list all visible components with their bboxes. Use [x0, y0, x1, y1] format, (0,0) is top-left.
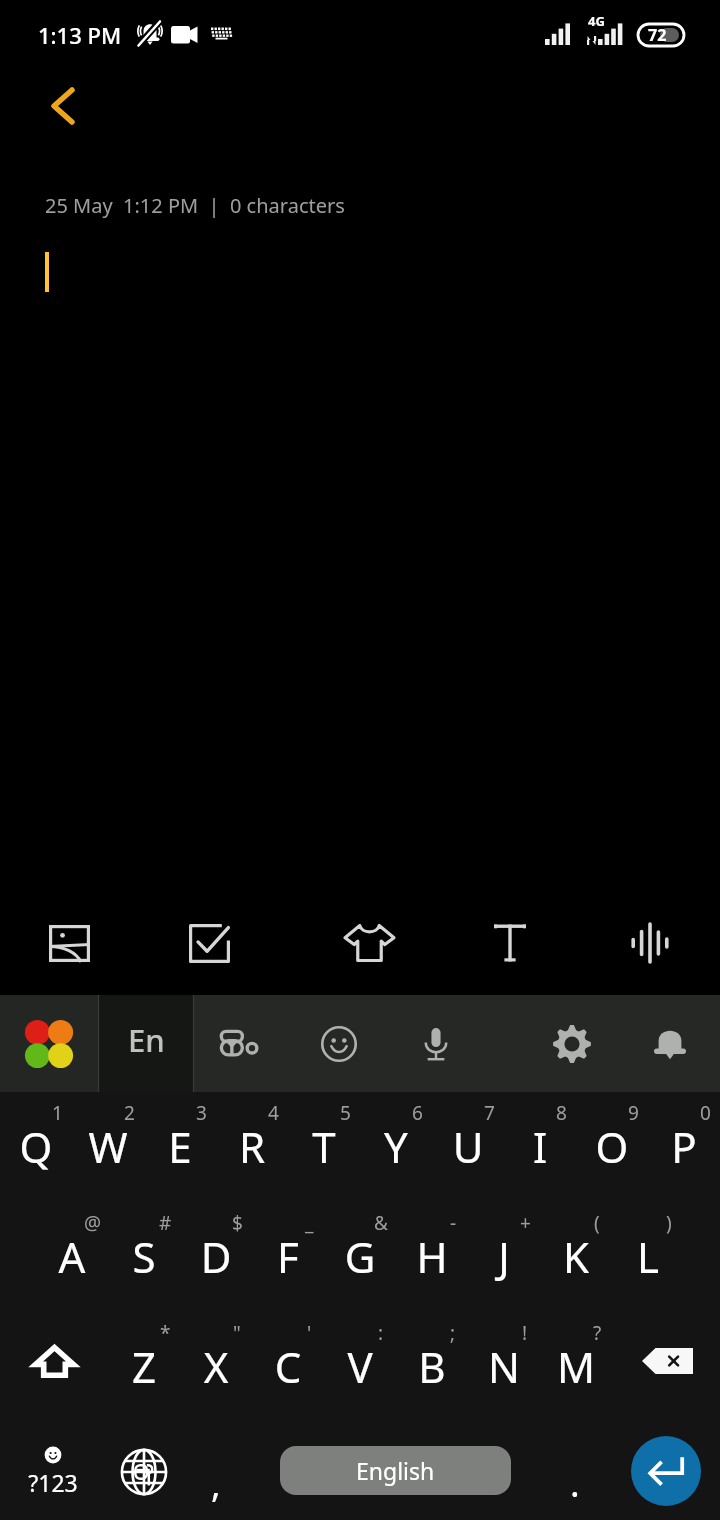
button[interactable]: _: [252, 1202, 324, 1312]
button[interactable]: &: [324, 1202, 396, 1312]
staticText: 1:13 PM: [38, 20, 122, 50]
staticText: *: [160, 1320, 171, 1346]
staticText: C: [252, 1338, 324, 1395]
staticText: ': [307, 1320, 312, 1346]
staticText: J: [468, 1228, 540, 1285]
staticText: Y: [360, 1118, 432, 1175]
staticText: M: [540, 1338, 612, 1395]
staticText: 6: [412, 1100, 423, 1126]
staticText: 2: [124, 1100, 135, 1126]
button[interactable]: #: [108, 1202, 180, 1312]
button[interactable]: Language: [191, 995, 287, 1092]
staticText: .: [570, 1459, 580, 1508]
button[interactable]: 9: [576, 1092, 648, 1202]
staticText: _: [305, 1210, 314, 1236]
staticText: R: [216, 1118, 288, 1175]
button[interactable]: ,: [180, 1422, 252, 1520]
staticText: A: [36, 1228, 108, 1285]
button[interactable]: ?: [540, 1312, 612, 1422]
button[interactable]: .: [539, 1422, 611, 1520]
button[interactable]: Shift: [0, 1312, 108, 1422]
button[interactable]: Text style: [470, 892, 550, 994]
staticText: !: [522, 1320, 528, 1346]
staticText: L: [612, 1228, 684, 1285]
staticText: G: [324, 1228, 396, 1285]
button[interactable]: Add checklist: [169, 892, 249, 994]
button[interactable]: Switch language: [108, 1422, 180, 1520]
staticText: ,: [211, 1459, 221, 1508]
staticText: 1: [52, 1100, 63, 1126]
staticText: ": [233, 1320, 241, 1346]
staticText: &: [374, 1210, 388, 1236]
staticText: 3: [196, 1100, 207, 1126]
button[interactable]: En: [98, 995, 194, 1092]
staticText: B: [396, 1338, 468, 1395]
button[interactable]: 8: [504, 1092, 576, 1202]
button[interactable]: 1: [0, 1092, 72, 1202]
staticText: -: [450, 1210, 457, 1236]
staticText: ?: [593, 1320, 602, 1346]
staticText: 25 May 1:12 PM | 0 characters: [45, 192, 345, 219]
button[interactable]: Notifications: [622, 995, 718, 1092]
staticText: 4G: [588, 12, 605, 30]
button[interactable]: Voice input: [388, 995, 484, 1092]
staticText: ): [666, 1210, 672, 1236]
button[interactable]: Settings: [524, 995, 620, 1092]
button[interactable]: Voice note: [610, 892, 690, 994]
button[interactable]: Enter: [631, 1436, 701, 1506]
button[interactable]: ": [180, 1312, 252, 1422]
button[interactable]: Theme: [0, 995, 98, 1092]
button[interactable]: Back: [14, 66, 94, 146]
staticText: #: [159, 1210, 172, 1236]
staticText: 72: [648, 24, 667, 46]
staticText: U: [432, 1118, 504, 1175]
button[interactable]: !: [468, 1312, 540, 1422]
button[interactable]: Add image: [29, 892, 109, 994]
staticText: 5: [340, 1100, 351, 1126]
button[interactable]: ': [252, 1312, 324, 1422]
staticText: @: [84, 1210, 102, 1236]
staticText: 4: [268, 1100, 279, 1126]
staticText: 9: [628, 1100, 639, 1126]
staticText: :: [378, 1320, 384, 1346]
button[interactable]: Backspace: [612, 1312, 720, 1422]
button[interactable]: 4: [216, 1092, 288, 1202]
staticText: S: [108, 1228, 180, 1285]
button[interactable]: (: [540, 1202, 612, 1312]
staticText: 7: [484, 1100, 495, 1126]
staticText: ?123: [7, 1467, 99, 1498]
staticText: W: [72, 1118, 144, 1175]
button[interactable]: Symbols: [7, 1422, 99, 1520]
button[interactable]: ;: [396, 1312, 468, 1422]
button[interactable]: 3: [144, 1092, 216, 1202]
button[interactable]: @: [36, 1202, 108, 1312]
button[interactable]: 0: [648, 1092, 720, 1202]
staticText: Q: [0, 1118, 72, 1175]
button[interactable]: -: [396, 1202, 468, 1312]
staticText: P: [648, 1118, 720, 1175]
button[interactable]: 5: [288, 1092, 360, 1202]
staticText: (: [594, 1210, 600, 1236]
button[interactable]: :: [324, 1312, 396, 1422]
button[interactable]: *: [108, 1312, 180, 1422]
staticText: En: [128, 1019, 165, 1061]
staticText: H: [396, 1228, 468, 1285]
staticText: K: [540, 1228, 612, 1285]
button[interactable]: Add sticker: [329, 892, 409, 994]
staticText: O: [576, 1118, 648, 1175]
button[interactable]: English: [280, 1446, 511, 1495]
staticText: 8: [556, 1100, 567, 1126]
staticText: F: [252, 1228, 324, 1285]
button[interactable]: 7: [432, 1092, 504, 1202]
staticText: ;: [450, 1320, 456, 1346]
staticText: I: [504, 1118, 576, 1175]
button[interactable]: $: [180, 1202, 252, 1312]
button[interactable]: 2: [72, 1092, 144, 1202]
staticText: V: [324, 1338, 396, 1395]
button[interactable]: +: [468, 1202, 540, 1312]
staticText: E: [144, 1118, 216, 1175]
button[interactable]: Emoji: [291, 995, 387, 1092]
button[interactable]: ): [612, 1202, 684, 1312]
staticText: 0: [700, 1100, 711, 1126]
button[interactable]: 6: [360, 1092, 432, 1202]
